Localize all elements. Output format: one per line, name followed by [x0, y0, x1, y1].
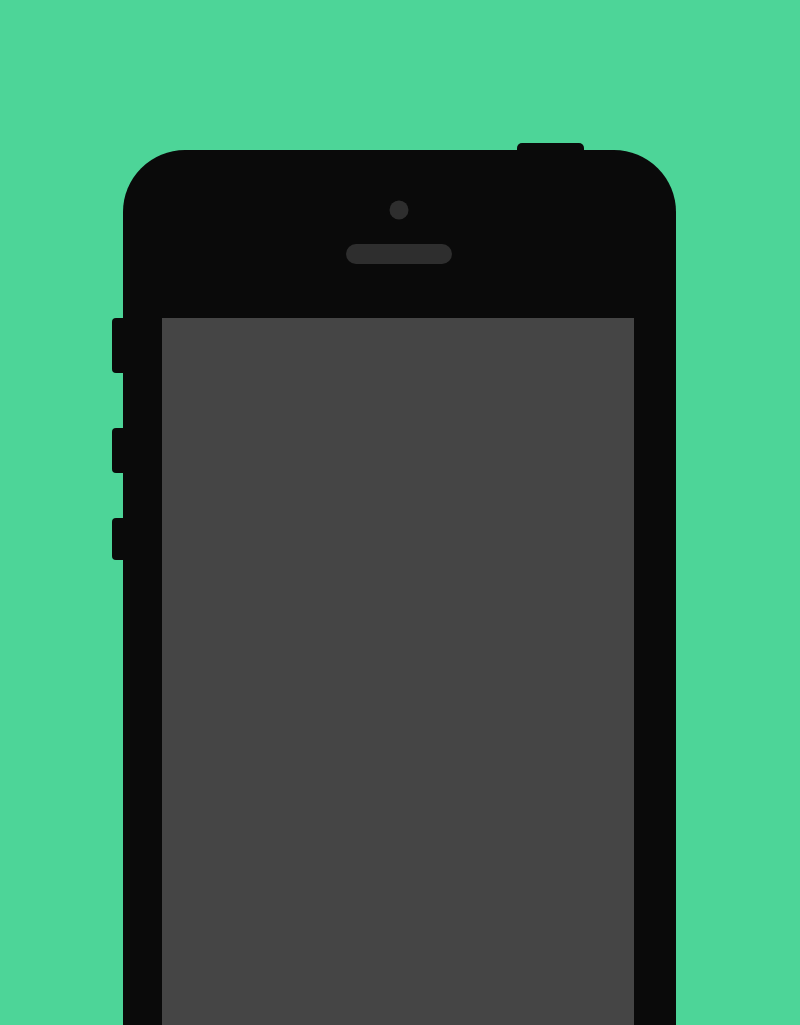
button[interactable]: Smartphone mockup — [0, 0, 800, 1025]
